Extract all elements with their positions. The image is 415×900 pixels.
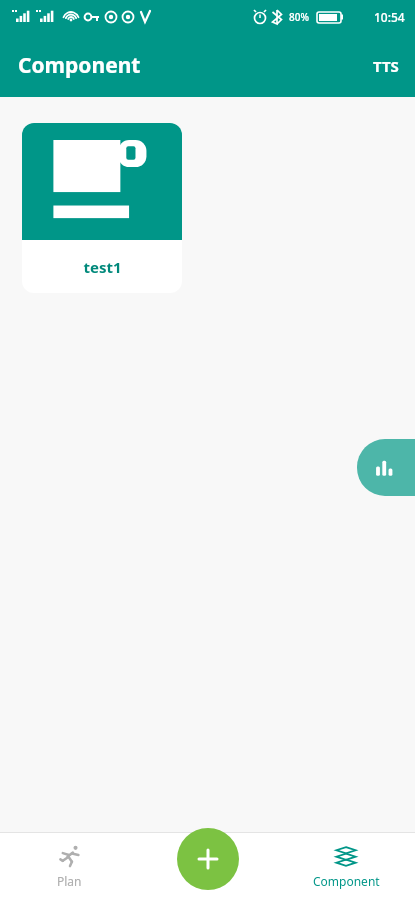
staticText: Component [18,51,141,80]
staticText: 80% [289,10,309,24]
staticText: test1 [83,257,122,277]
button[interactable]: Component [277,832,415,900]
staticText: 10:54 [374,9,405,25]
button[interactable]: test1 [22,123,182,293]
staticText: Component [313,873,380,889]
staticText: Plan [57,873,82,889]
staticText: TTS [373,56,399,76]
button[interactable]: Plan [0,832,139,900]
button[interactable]: Statistics [357,439,415,496]
button[interactable]: TTS [357,42,415,90]
button[interactable]: Add [177,828,239,890]
